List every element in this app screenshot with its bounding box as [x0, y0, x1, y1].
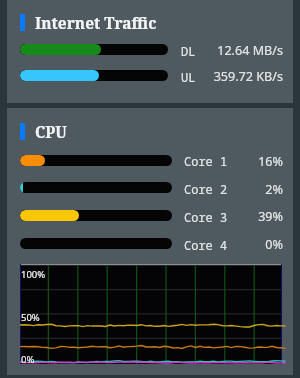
staticText: Core 2 [184, 181, 228, 197]
staticText: 16% [153, 153, 283, 170]
button[interactable] [20, 210, 172, 221]
staticText: 0% [153, 236, 283, 253]
staticText: 0% [21, 353, 35, 366]
staticText: DL [181, 43, 196, 59]
staticText: 50% [21, 311, 40, 324]
button[interactable] [20, 155, 172, 166]
button[interactable] [20, 238, 172, 249]
staticText: 100% [21, 268, 46, 281]
staticText: Internet Traffic [35, 12, 157, 29]
staticText: UL [181, 69, 196, 85]
staticText: Core 1 [184, 153, 228, 169]
button[interactable] [20, 44, 168, 55]
staticText: CPU [35, 121, 67, 138]
staticText: 2% [153, 181, 283, 198]
button[interactable]: CPU [20, 123, 67, 140]
button[interactable] [20, 70, 168, 81]
staticText: 39% [153, 208, 283, 225]
staticText: 12.64 MB/s [153, 42, 283, 59]
staticText: Core 3 [184, 209, 228, 225]
button[interactable] [20, 182, 172, 193]
button[interactable]: 100% [20, 264, 282, 364]
button[interactable]: Internet Traffic [20, 14, 157, 31]
staticText: Core 4 [184, 237, 228, 253]
staticText: 359.72 KB/s [153, 68, 283, 85]
